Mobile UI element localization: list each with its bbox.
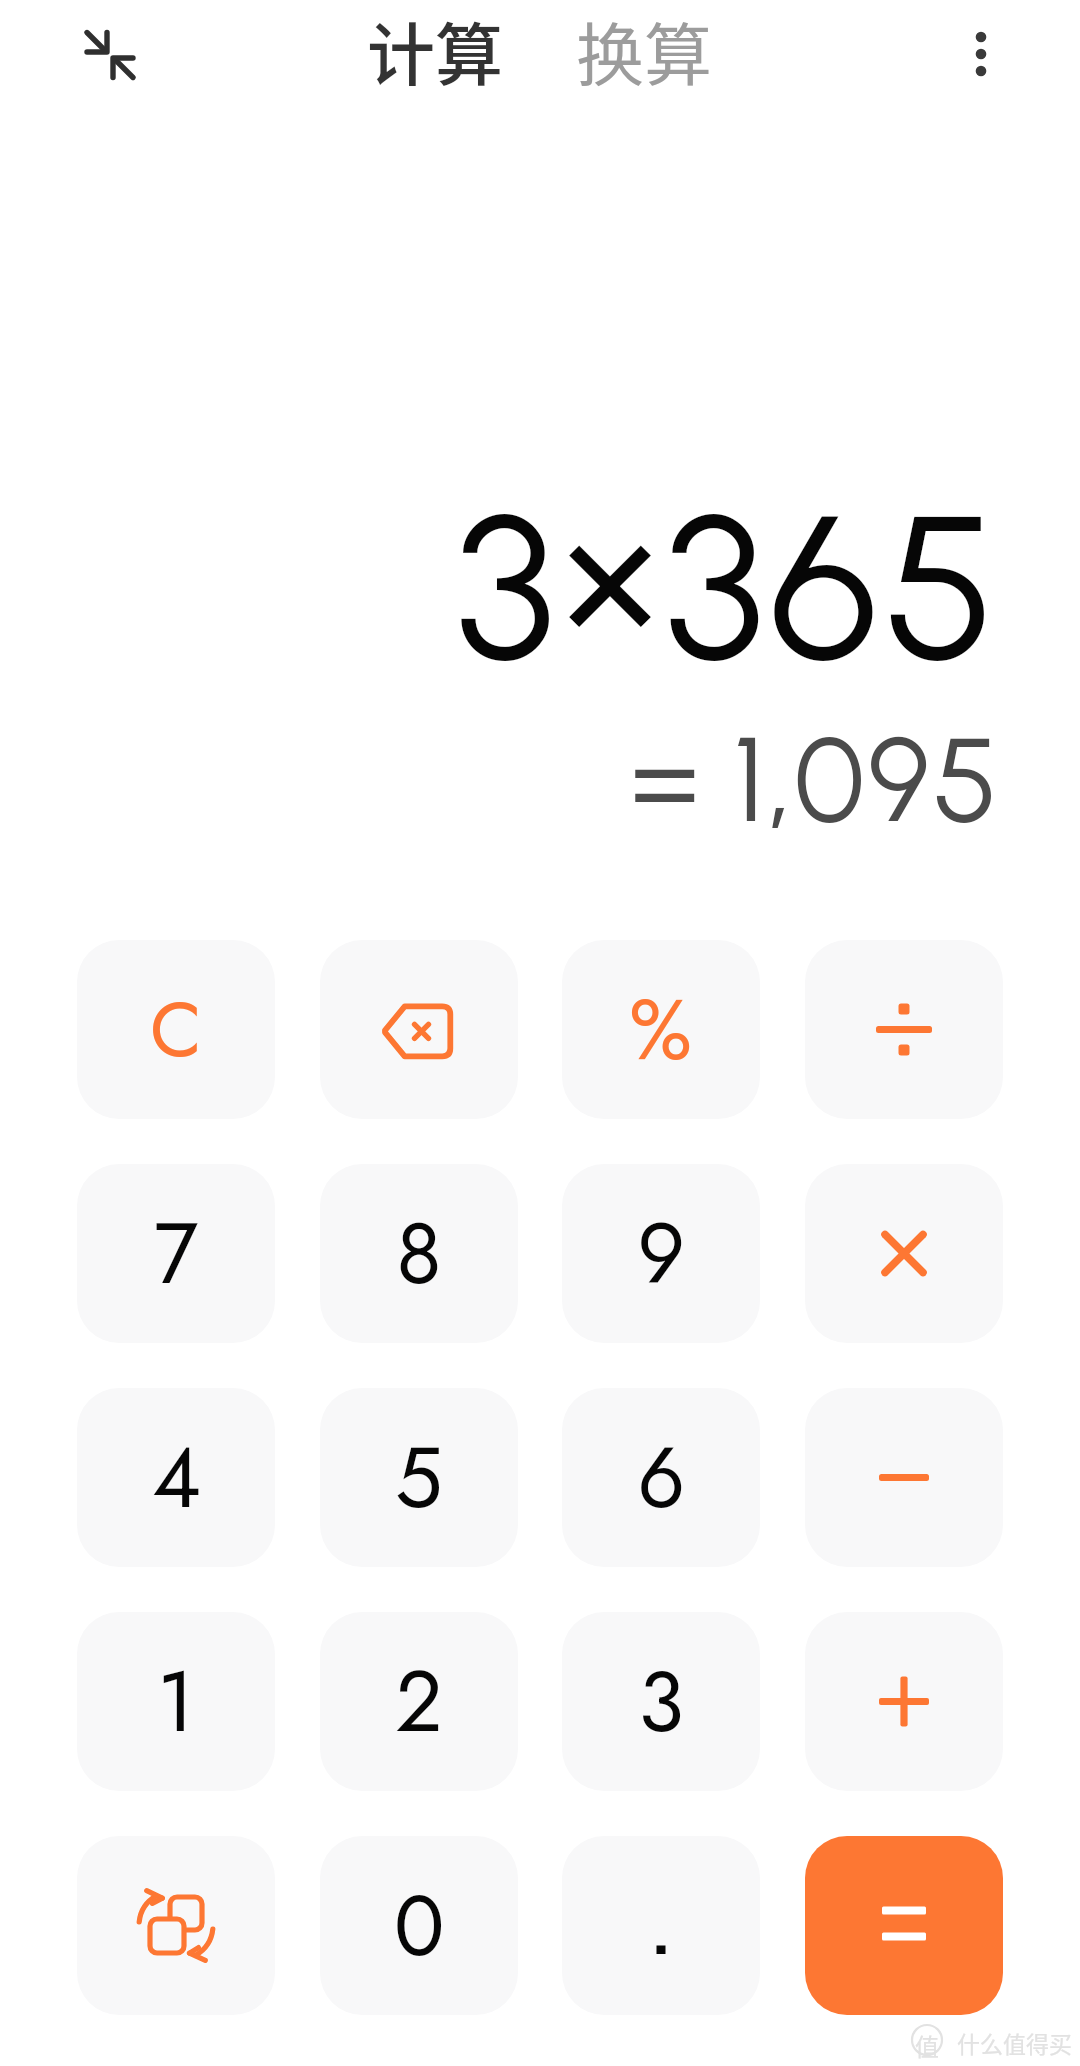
staticText: 计算 bbox=[367, 1, 504, 99]
button[interactable] bbox=[562, 1836, 760, 2015]
staticText: 5 bbox=[395, 1417, 443, 1538]
button[interactable]: 换算 bbox=[572, 0, 717, 105]
button[interactable]: 1 bbox=[77, 1612, 275, 1791]
button[interactable]: 2 bbox=[320, 1612, 518, 1791]
staticText: × bbox=[560, 454, 664, 698]
button[interactable]: 6 bbox=[562, 1388, 760, 1567]
staticText: 3 bbox=[455, 465, 560, 709]
staticText: C bbox=[150, 975, 203, 1085]
button[interactable]: Plus bbox=[805, 1612, 1003, 1791]
button[interactable]: Multiply bbox=[805, 1164, 1003, 1343]
staticText: 6 bbox=[637, 1417, 686, 1538]
button[interactable]: Unit conversion bbox=[77, 1836, 275, 2015]
button[interactable]: 0 bbox=[320, 1836, 518, 2015]
staticText: 3 bbox=[638, 1641, 684, 1762]
staticText: 4 bbox=[152, 1417, 201, 1538]
button[interactable]: Clear bbox=[77, 940, 275, 1119]
button[interactable]: 8 bbox=[320, 1164, 518, 1343]
staticText: 换算 bbox=[576, 1, 713, 99]
staticText: = 1,095 bbox=[630, 709, 1001, 851]
button[interactable]: More options bbox=[935, 8, 1027, 100]
staticText: 9 bbox=[637, 1193, 686, 1314]
staticText: % bbox=[629, 969, 693, 1090]
button[interactable]: 计算 bbox=[363, 0, 508, 105]
staticText: 8 bbox=[396, 1193, 442, 1314]
button[interactable]: Collapse bbox=[60, 10, 160, 110]
button[interactable]: 7 bbox=[77, 1164, 275, 1343]
button[interactable]: 3 bbox=[562, 1612, 760, 1791]
button[interactable]: Backspace bbox=[320, 940, 518, 1119]
staticText: 2 bbox=[395, 1641, 443, 1762]
button[interactable]: Minus bbox=[805, 1388, 1003, 1567]
button[interactable]: Percent bbox=[562, 940, 760, 1119]
button[interactable]: 9 bbox=[562, 1164, 760, 1343]
staticText: 值 bbox=[915, 2028, 939, 2060]
staticText: 1 bbox=[157, 1641, 195, 1762]
button[interactable]: Equals bbox=[805, 1836, 1003, 2015]
staticText: 什么值得买 bbox=[957, 2026, 1072, 2059]
button[interactable]: 5 bbox=[320, 1388, 518, 1567]
button[interactable]: Divide bbox=[805, 940, 1003, 1119]
staticText: 365 bbox=[664, 465, 1001, 709]
staticText: 7 bbox=[154, 1193, 199, 1314]
button[interactable]: 4 bbox=[77, 1388, 275, 1567]
staticText: 0 bbox=[394, 1865, 445, 1986]
